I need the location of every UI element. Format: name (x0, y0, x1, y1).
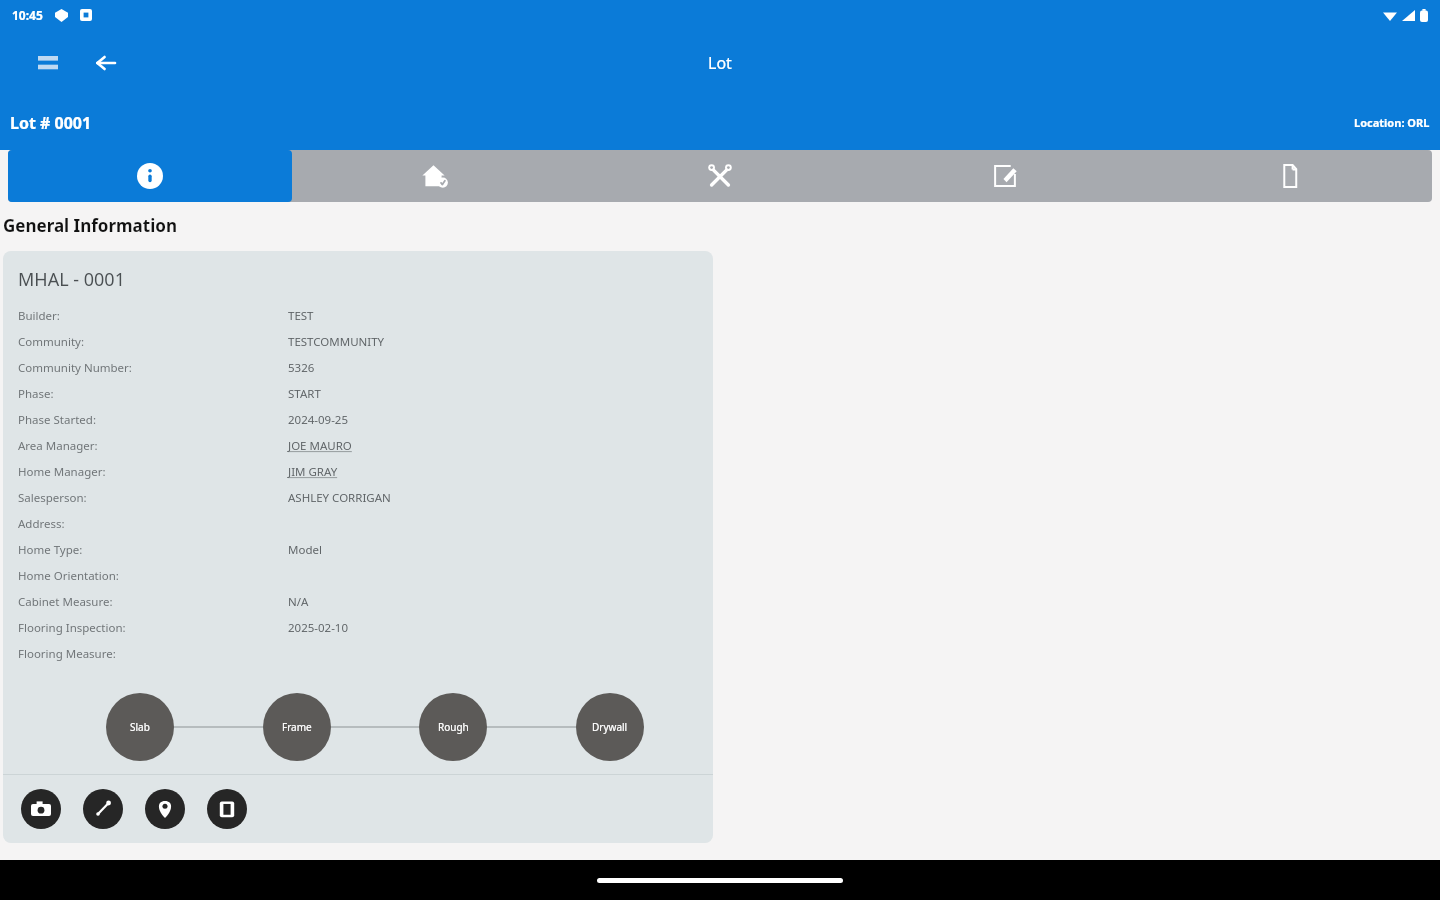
staticText: Frame (282, 720, 312, 734)
button[interactable]: Notes (207, 789, 247, 829)
staticText: Lot # 0001 (10, 112, 92, 134)
staticText: Community Number: (18, 360, 132, 376)
staticText: ASHLEY CORRIGAN (288, 490, 391, 506)
staticText: Lot (708, 52, 732, 74)
staticText: Location: ORL (1354, 115, 1430, 130)
staticText: Area Manager: (18, 438, 98, 454)
staticText: TESTCOMMUNITY (288, 334, 385, 350)
staticText: Drywall (592, 720, 628, 734)
button[interactable]: Location (145, 789, 185, 829)
button[interactable]: Back (86, 44, 124, 82)
staticText: 2025-02-10 (288, 620, 349, 636)
button[interactable]: Camera (21, 789, 61, 829)
button[interactable]: Attachment (83, 789, 123, 829)
staticText: Slab (130, 720, 150, 734)
staticText: Phase: (18, 386, 54, 402)
staticText: Salesperson: (18, 490, 87, 506)
staticText: Home Type: (18, 542, 83, 558)
staticText: Home Orientation: (18, 568, 119, 584)
staticText: MHAL - 0001 (18, 267, 125, 292)
button[interactable]: Edit (862, 150, 1147, 202)
staticText: 10:45 (12, 7, 43, 23)
button[interactable]: Information (8, 150, 292, 202)
staticText: Community: (18, 334, 85, 350)
staticText: Flooring Inspection: (18, 620, 126, 636)
staticText: 5326 (288, 360, 315, 376)
staticText: TEST (288, 308, 314, 324)
staticText: Phase Started: (18, 412, 96, 428)
staticText: JOE MAURO (288, 438, 352, 454)
button[interactable]: Menu (30, 45, 66, 81)
staticText: General Information (3, 214, 177, 237)
button[interactable]: Tools (577, 150, 862, 202)
staticText: Address: (18, 516, 65, 532)
button[interactable]: Documents (1147, 150, 1432, 202)
staticText: Model (288, 542, 322, 558)
staticText: START (288, 386, 321, 402)
staticText: Builder: (18, 308, 60, 324)
staticText: Rough (438, 720, 469, 734)
staticText: Flooring Measure: (18, 646, 116, 662)
staticText: 2024-09-25 (288, 412, 349, 428)
staticText: Home Manager: (18, 464, 106, 480)
button[interactable]: Home (292, 150, 577, 202)
staticText: Cabinet Measure: (18, 594, 113, 610)
staticText: JIM GRAY (288, 464, 338, 480)
staticText: N/A (288, 594, 309, 610)
